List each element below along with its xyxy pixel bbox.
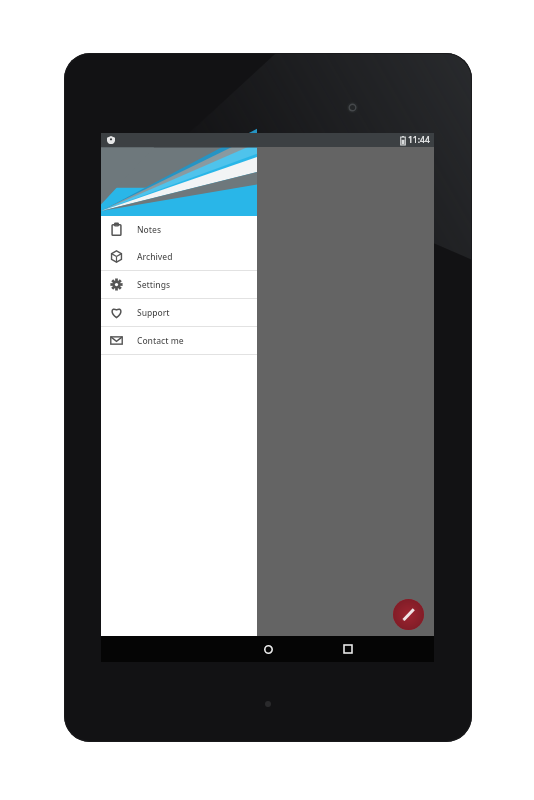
staticText: Contact me: [137, 335, 184, 347]
button[interactable]: New note: [393, 599, 424, 630]
button[interactable]: Archived: [101, 243, 257, 270]
button[interactable]: [257, 133, 434, 662]
button[interactable]: Settings: [101, 271, 257, 298]
button[interactable]: Recent apps: [335, 636, 361, 662]
button[interactable]: Contact me: [101, 327, 257, 354]
button[interactable]: Notes: [101, 216, 257, 243]
staticText: Add your notes here: [215, 370, 321, 385]
staticText: Archived: [137, 251, 173, 263]
staticText: 11:44: [408, 134, 430, 146]
staticText: Notes: [137, 224, 162, 236]
staticText: Support: [137, 307, 170, 319]
staticText: Settings: [137, 279, 171, 291]
button[interactable]: Home: [255, 636, 281, 662]
button[interactable]: Support: [101, 299, 257, 326]
